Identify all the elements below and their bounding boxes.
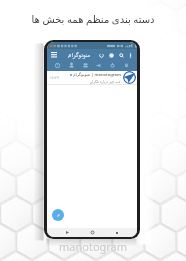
button[interactable]: Recent apps — [112, 228, 121, 237]
button[interactable]: Home — [88, 228, 97, 237]
button[interactable]: Back — [63, 228, 72, 237]
staticText: دسته بندی منظم همه بخش ها — [31, 12, 155, 26]
staticText: manotogram — [59, 239, 128, 254]
staticText: همه چیز درباره تلگرام — [90, 79, 121, 84]
button[interactable]: Channels — [94, 61, 103, 70]
staticText: منوتوگرام | manotogram — [73, 72, 121, 78]
button[interactable]: Contacts — [67, 61, 76, 70]
button[interactable]: More options — [127, 52, 134, 59]
staticText: ۱۲:۳۹ — [50, 75, 59, 80]
button[interactable]: All chats — [53, 61, 62, 70]
button[interactable]: Groups — [81, 61, 90, 70]
button[interactable]: Search — [117, 51, 125, 59]
button[interactable]: ۱۲:۳۹ — [47, 71, 137, 84]
staticText: منوتوگرام — [68, 52, 91, 58]
button[interactable]: Refresh — [97, 51, 105, 59]
button[interactable]: Bots — [108, 61, 117, 70]
button[interactable]: Secret chats — [122, 61, 131, 70]
button[interactable]: Calls — [107, 51, 115, 59]
button[interactable]: Menu — [49, 50, 58, 59]
button[interactable]: New message — [52, 209, 64, 221]
